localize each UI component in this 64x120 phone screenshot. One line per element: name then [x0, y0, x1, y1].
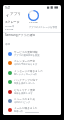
staticText: 15 GB 中 — [5, 25, 15, 28]
button[interactable]: ニュースのまとめ — [3, 96, 61, 105]
staticText: 3.54 GB — [5, 28, 14, 31]
staticText: 今日 — [5, 42, 11, 45]
staticText: アプリ — [10, 12, 22, 17]
staticText: セキュリティ更新 — [14, 88, 36, 91]
staticText: アプリのストレージを管理 — [29, 26, 58, 29]
staticText: サービスの更新情報 — [14, 50, 38, 53]
staticText: アプリの通知設定を変更 — [14, 54, 40, 57]
staticText: カレンダーの予定 — [14, 59, 36, 62]
staticText: 今日のトピック — [14, 101, 31, 104]
staticText: 新しいメッセージ 2件 — [14, 73, 37, 76]
staticText: ストレージ — [5, 20, 20, 24]
staticText: 9:41 — [5, 6, 11, 10]
staticText: 3.54 GB — [29, 20, 38, 23]
staticText: Samsungアプリの通知 — [5, 33, 36, 37]
staticText: 写真を保存しました — [14, 82, 35, 85]
button[interactable]: サービスの更新情報 — [3, 49, 61, 58]
button[interactable]: バックアップが完了 — [3, 77, 61, 86]
button[interactable]: セキュリティ更新 — [3, 87, 61, 96]
button[interactable]: カレンダーの予定 — [3, 58, 61, 67]
button[interactable]: メッセージが届きました — [3, 68, 61, 77]
staticText: バックアップが完了 — [14, 78, 38, 81]
button[interactable]: Back — [4, 12, 10, 18]
staticText: メールが届きました — [14, 106, 38, 109]
staticText: 端末を保護します — [14, 92, 33, 95]
button[interactable]: メールが届きました — [3, 105, 61, 114]
staticText: ニュースのまとめ — [14, 97, 36, 100]
staticText: メッセージが届きました — [14, 69, 44, 72]
staticText: 新着 1件 — [14, 110, 23, 113]
staticText: 今日の予定があります — [14, 63, 38, 66]
